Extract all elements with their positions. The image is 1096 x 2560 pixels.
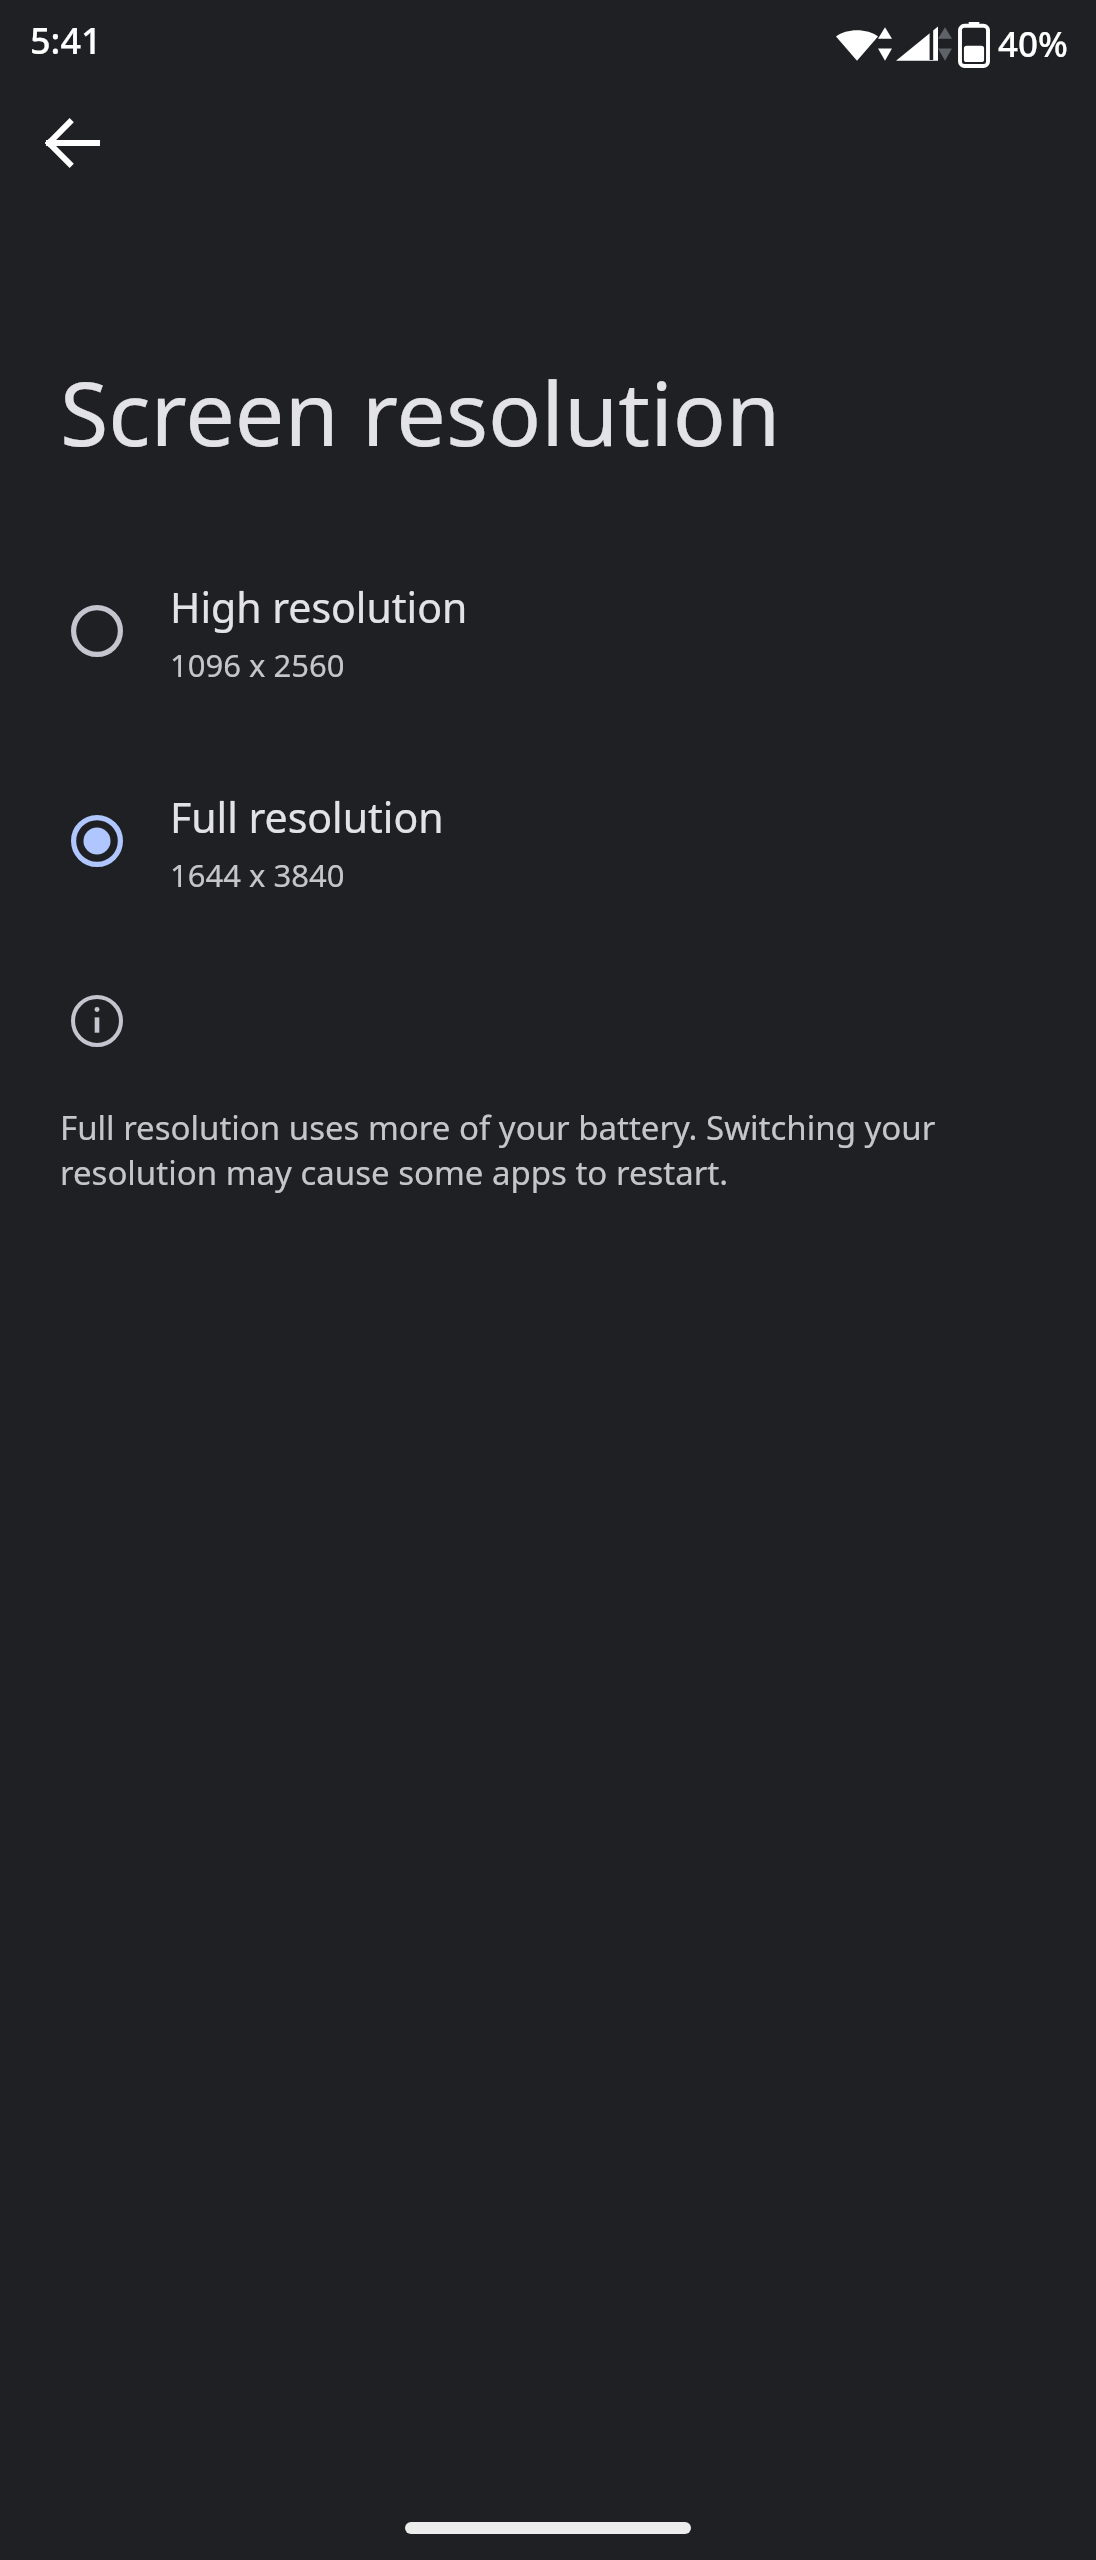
- staticText: Full resolution: [170, 789, 444, 845]
- button[interactable]: High resolution: [0, 565, 1096, 740]
- staticText: Full resolution uses more of your batter…: [60, 1105, 1060, 1194]
- button[interactable]: Full resolution: [0, 775, 1096, 960]
- staticText: High resolution: [170, 579, 468, 635]
- other: Information: [71, 995, 123, 1047]
- staticText: Screen resolution: [60, 352, 781, 472]
- staticText: 1644 x 3840: [170, 854, 345, 896]
- staticText: 40%: [998, 20, 1068, 68]
- button[interactable]: Back: [18, 88, 128, 198]
- staticText: 1096 x 2560: [170, 644, 345, 686]
- staticText: 5:41: [30, 16, 102, 65]
